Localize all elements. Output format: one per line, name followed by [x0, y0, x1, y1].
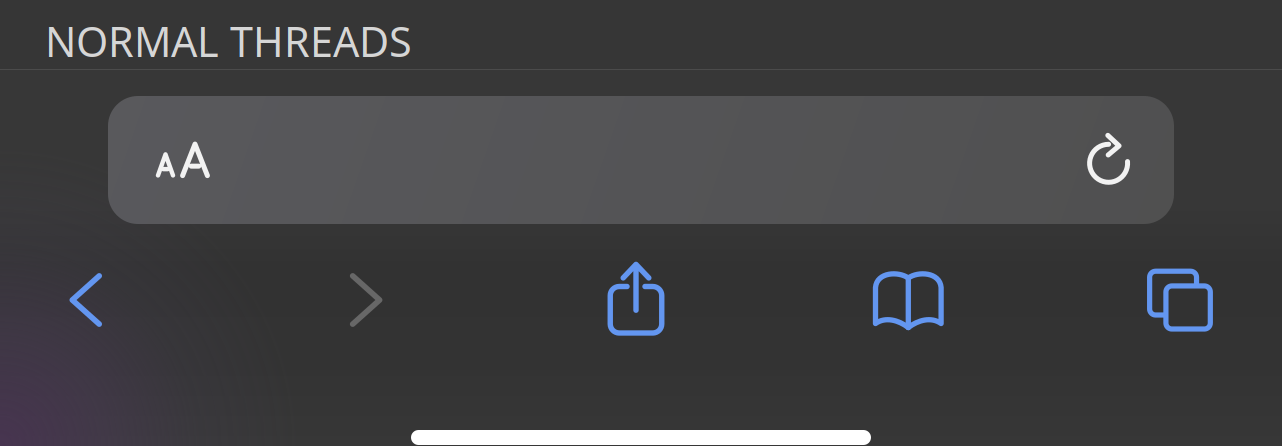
button[interactable]: Forward	[0, 0, 1282, 446]
button[interactable]: Tabs	[0, 0, 1282, 446]
button[interactable]: Back	[0, 0, 1282, 446]
button[interactable]: Bookmarks	[0, 0, 1282, 446]
staticText: NORMAL THREADS	[45, 14, 412, 68]
button[interactable]: Share	[0, 0, 1282, 446]
